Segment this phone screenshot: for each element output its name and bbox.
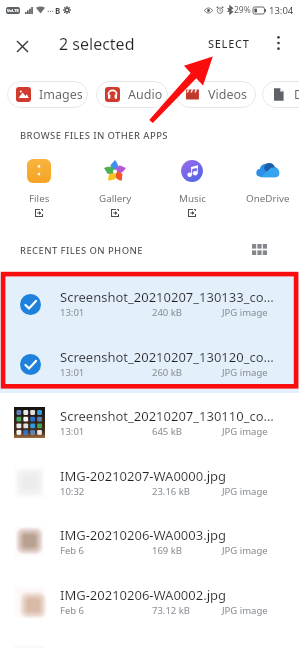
button[interactable]: Audio [96,81,168,108]
button[interactable]: Videos [176,81,256,108]
staticText: IMG-20210206-WA0003.jpg [60,526,275,544]
staticText: IMG-20210207-WA0000.jpg [60,467,275,485]
button[interactable]: Screenshot_20210207_130110_co… [0,393,299,453]
button[interactable]: Music [155,155,229,217]
staticText: SELECT [208,36,250,51]
staticText: BROWSE FILES IN OTHER APPS [20,129,168,142]
staticText: 2 selected [59,33,135,55]
staticText: Music [179,192,206,205]
button[interactable]: SELECT [200,30,258,56]
staticText: Files [29,192,50,205]
staticText: 23.16 kB [152,485,191,498]
staticText: Feb 6 [60,544,85,557]
staticText: 260 kB [152,366,183,379]
button[interactable]: Close [6,30,38,62]
staticText: JPG image [222,425,268,438]
button[interactable]: Files [2,155,76,217]
staticText: Images [39,86,83,103]
button[interactable]: More options [266,31,290,55]
button[interactable]: Documents [262,81,299,108]
button[interactable]: IMG-20210207-WA0000.jpg [0,453,299,513]
staticText: Gallery [99,192,132,205]
staticText: JPG image [222,485,268,498]
button[interactable]: OneDrive [231,155,299,209]
staticText: Documents [294,86,299,103]
staticText: 13:01 [60,425,85,438]
staticText: Screenshot_20210207_130120_co… [60,348,275,366]
staticText: Audio [128,86,163,103]
staticText: 240 kB [152,306,183,319]
staticText: 29% [234,4,251,16]
staticText: 10:32 [60,485,85,498]
staticText: 73.12 kB [152,604,191,617]
staticText: 13:01 [60,366,85,379]
button[interactable]: IMG-20210206-WA0003.jpg [0,512,299,572]
button[interactable]: Gallery [78,155,152,217]
staticText: OneDrive [246,192,290,205]
staticText: JPG image [222,544,268,557]
staticText: IMG-20210206-WA0002.jpg [60,586,275,604]
staticText: Videos [208,86,248,103]
staticText: Feb 6 [60,604,85,617]
button[interactable]: IMG-20210206-WA0002.jpg [0,572,299,632]
button[interactable]: Screenshot_20210207_130133_co… [0,274,299,334]
staticText: Screenshot_20210207_130133_co… [60,288,275,306]
staticText: JPG image [222,366,268,379]
staticText: 13:01 [60,306,85,319]
staticText: 169 kB [152,544,183,557]
staticText: B [55,5,61,16]
staticText: 13:04 [269,4,294,17]
staticText: VoLTE [7,8,19,13]
button[interactable]: Screenshot_20210207_130120_co… [0,334,299,394]
button[interactable]: Grid view [248,238,270,260]
staticText: JPG image [222,306,268,319]
staticText: 645 kB [152,425,183,438]
button[interactable]: Images [7,81,88,108]
staticText: RECENT FILES ON PHONE [20,244,143,257]
staticText: JPG image [222,604,268,617]
staticText: Screenshot_20210207_130110_co… [60,407,275,425]
